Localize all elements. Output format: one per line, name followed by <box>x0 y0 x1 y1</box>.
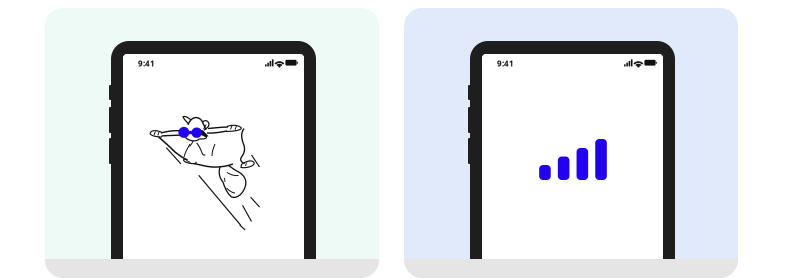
button[interactable]: Flying squirrel app screenshot <box>45 8 379 278</box>
button[interactable]: Signal bars app screenshot <box>404 8 738 278</box>
staticText: 9:41 <box>497 58 514 69</box>
staticText: 9:41 <box>138 58 155 69</box>
